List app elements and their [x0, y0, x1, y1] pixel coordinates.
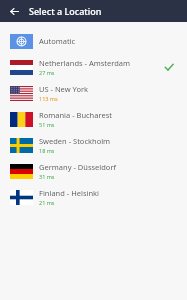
- staticText: Sweden - Stockholm: [39, 136, 111, 146]
- staticText: 18 ms: [39, 147, 55, 154]
- button[interactable]: Germany - Düsseldorf: [0, 158, 187, 184]
- button[interactable]: Netherlands - Amsterdam: [0, 54, 187, 80]
- button[interactable]: US - New York: [0, 80, 187, 106]
- button[interactable]: Sweden - Stockholm: [0, 132, 187, 158]
- button[interactable]: Back: [5, 2, 23, 20]
- staticText: 51 ms: [39, 121, 55, 128]
- staticText: Select a Location: [29, 5, 102, 17]
- staticText: 113 ms: [39, 95, 58, 102]
- staticText: 27 ms: [39, 69, 55, 76]
- staticText: 31 ms: [39, 173, 55, 180]
- staticText: 21 ms: [39, 199, 55, 206]
- staticText: US - New York: [39, 84, 89, 94]
- staticText: Netherlands - Amsterdam: [39, 58, 131, 68]
- button[interactable]: Romania - Bucharest: [0, 106, 187, 132]
- staticText: Germany - Düsseldorf: [39, 162, 117, 172]
- staticText: Finland - Helsinki: [39, 188, 99, 198]
- staticText: Romania - Bucharest: [39, 110, 112, 120]
- button[interactable]: Finland - Helsinki: [0, 184, 187, 210]
- button[interactable]: Automatic: [0, 28, 187, 54]
- staticText: Automatic: [39, 36, 76, 46]
